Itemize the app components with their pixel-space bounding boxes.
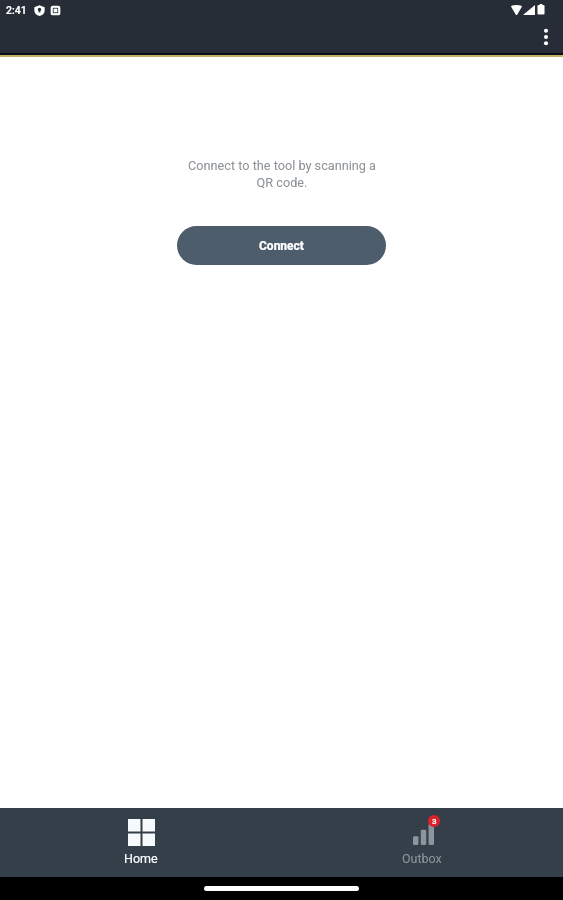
staticText: Home [124,851,158,866]
button[interactable]: Home [94,808,188,877]
staticText: Connect to the tool by scanning a QR cod… [188,158,376,190]
staticText: 3 [432,817,437,826]
staticText: Outbox [402,851,442,866]
button[interactable]: 3 [375,808,469,877]
staticText: Connect [259,239,304,253]
button[interactable]: More options [530,21,562,53]
button[interactable]: Connect [177,226,386,265]
staticText: 2:41 [6,4,27,16]
